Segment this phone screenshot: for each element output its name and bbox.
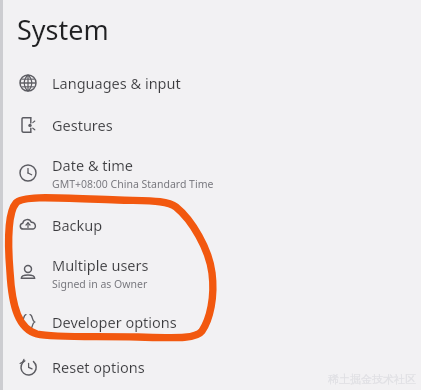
button[interactable]: Multiple users bbox=[0, 247, 421, 299]
staticText: Backup bbox=[52, 215, 103, 235]
button[interactable]: Date & time bbox=[0, 147, 421, 199]
staticText: Signed in as Owner bbox=[52, 277, 148, 291]
staticText: Multiple users bbox=[52, 255, 149, 275]
staticText: Developer options bbox=[52, 312, 177, 332]
staticText: System bbox=[17, 11, 109, 48]
button[interactable]: Languages & input bbox=[0, 60, 421, 106]
button[interactable]: Reset options bbox=[0, 345, 421, 389]
staticText: Languages & input bbox=[52, 73, 181, 93]
staticText: 稀土掘金技术社区 bbox=[328, 372, 416, 386]
staticText: Gestures bbox=[52, 115, 113, 135]
button[interactable]: Developer options bbox=[0, 301, 421, 343]
button[interactable]: Gestures bbox=[0, 103, 421, 146]
button[interactable]: Backup bbox=[0, 203, 421, 247]
staticText: Reset options bbox=[52, 357, 145, 377]
staticText: Date & time bbox=[52, 155, 133, 175]
staticText: GMT+08:00 China Standard Time bbox=[52, 177, 214, 191]
